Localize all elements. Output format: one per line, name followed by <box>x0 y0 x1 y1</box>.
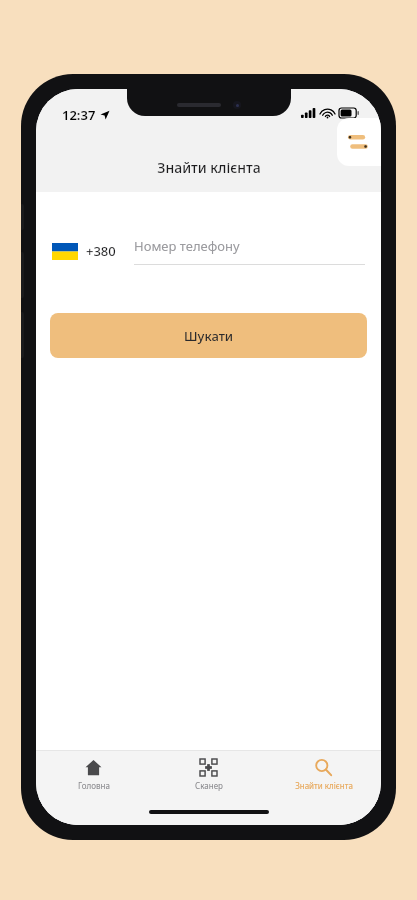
staticText: Номер телефону <box>134 237 240 255</box>
staticText: Знайти клієнта <box>295 780 353 791</box>
button[interactable]: +380 <box>52 236 116 266</box>
button[interactable]: Знайти клієнта <box>266 751 381 799</box>
staticText: Знайти клієнта <box>157 158 261 177</box>
staticText: +380 <box>86 242 116 260</box>
button[interactable]: Шукати <box>50 313 367 358</box>
staticText: Сканер <box>195 780 223 791</box>
button[interactable]: Номер телефону <box>134 237 365 265</box>
button[interactable]: Головна <box>36 751 151 799</box>
button[interactable]: Сканер <box>151 751 266 799</box>
staticText: 12:37 <box>62 106 96 124</box>
button[interactable]: Filter <box>337 118 381 166</box>
staticText: Головна <box>78 780 110 791</box>
staticText: Шукати <box>184 327 234 345</box>
